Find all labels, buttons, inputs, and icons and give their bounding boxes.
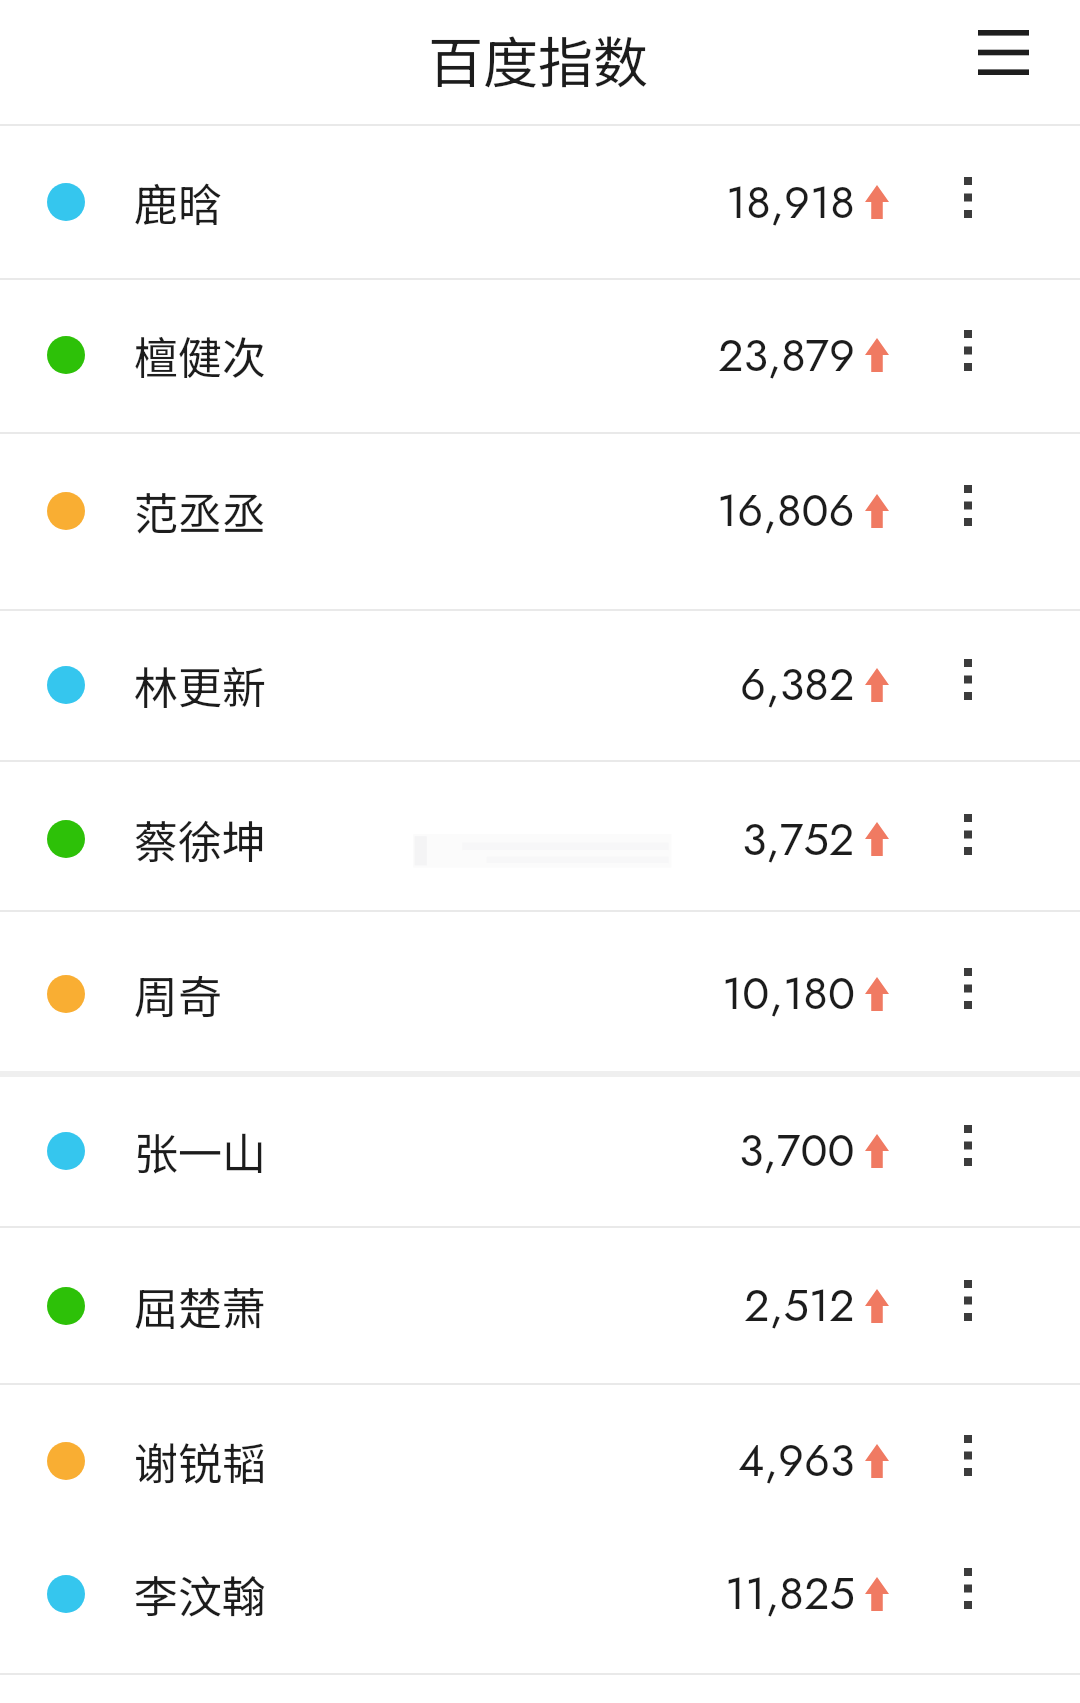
button[interactable]: More options xyxy=(889,280,1080,432)
staticText: 10,180 xyxy=(722,961,855,1026)
staticText: 6,382 xyxy=(740,652,855,717)
staticText: 11,825 xyxy=(725,1561,855,1626)
staticText: 16,806 xyxy=(717,478,855,543)
button[interactable]: More options xyxy=(889,912,1080,1071)
staticText: 蔡徐坤 xyxy=(134,807,266,871)
button[interactable]: Menu xyxy=(958,8,1048,96)
button[interactable]: 范丞丞 xyxy=(0,434,1080,609)
staticText: 23,879 xyxy=(718,323,855,388)
button[interactable]: 林更新 xyxy=(0,611,1080,760)
staticText: 李汶翰 xyxy=(134,1562,266,1626)
button[interactable]: 鹿晗 xyxy=(0,126,1080,278)
button[interactable]: 张一山 xyxy=(0,1077,1080,1226)
button[interactable]: 谢锐韬 xyxy=(0,1385,1080,1528)
staticText: 檀健次 xyxy=(134,323,266,387)
button[interactable]: More options xyxy=(889,1385,1080,1528)
staticText: 范丞丞 xyxy=(134,479,266,543)
button[interactable]: 屈楚萧 xyxy=(0,1228,1080,1383)
staticText: 林更新 xyxy=(134,653,266,717)
staticText: 张一山 xyxy=(134,1119,266,1183)
staticText: 鹿晗 xyxy=(134,170,222,234)
button[interactable]: More options xyxy=(889,762,1080,910)
staticText: 3,752 xyxy=(742,807,855,872)
staticText: 百度指数 xyxy=(428,19,649,99)
button[interactable]: More options xyxy=(889,1228,1080,1383)
staticText: 谢锐韬 xyxy=(134,1429,266,1493)
staticText: 屈楚萧 xyxy=(134,1274,266,1338)
button[interactable]: More options xyxy=(889,434,1080,609)
staticText: 18,918 xyxy=(726,170,855,235)
button[interactable]: More options xyxy=(889,1077,1080,1226)
button[interactable]: More options xyxy=(889,1528,1080,1673)
staticText: 周奇 xyxy=(134,962,222,1026)
button[interactable]: More options xyxy=(889,126,1080,278)
button[interactable]: More options xyxy=(889,611,1080,760)
button[interactable]: 蔡徐坤 xyxy=(0,762,1080,910)
staticText: 3,700 xyxy=(739,1118,855,1183)
button[interactable]: 李汶翰 xyxy=(0,1528,1080,1673)
staticText: 2,512 xyxy=(744,1273,855,1338)
button[interactable]: 檀健次 xyxy=(0,280,1080,432)
staticText: 4,963 xyxy=(738,1428,855,1493)
button[interactable]: 周奇 xyxy=(0,912,1080,1071)
